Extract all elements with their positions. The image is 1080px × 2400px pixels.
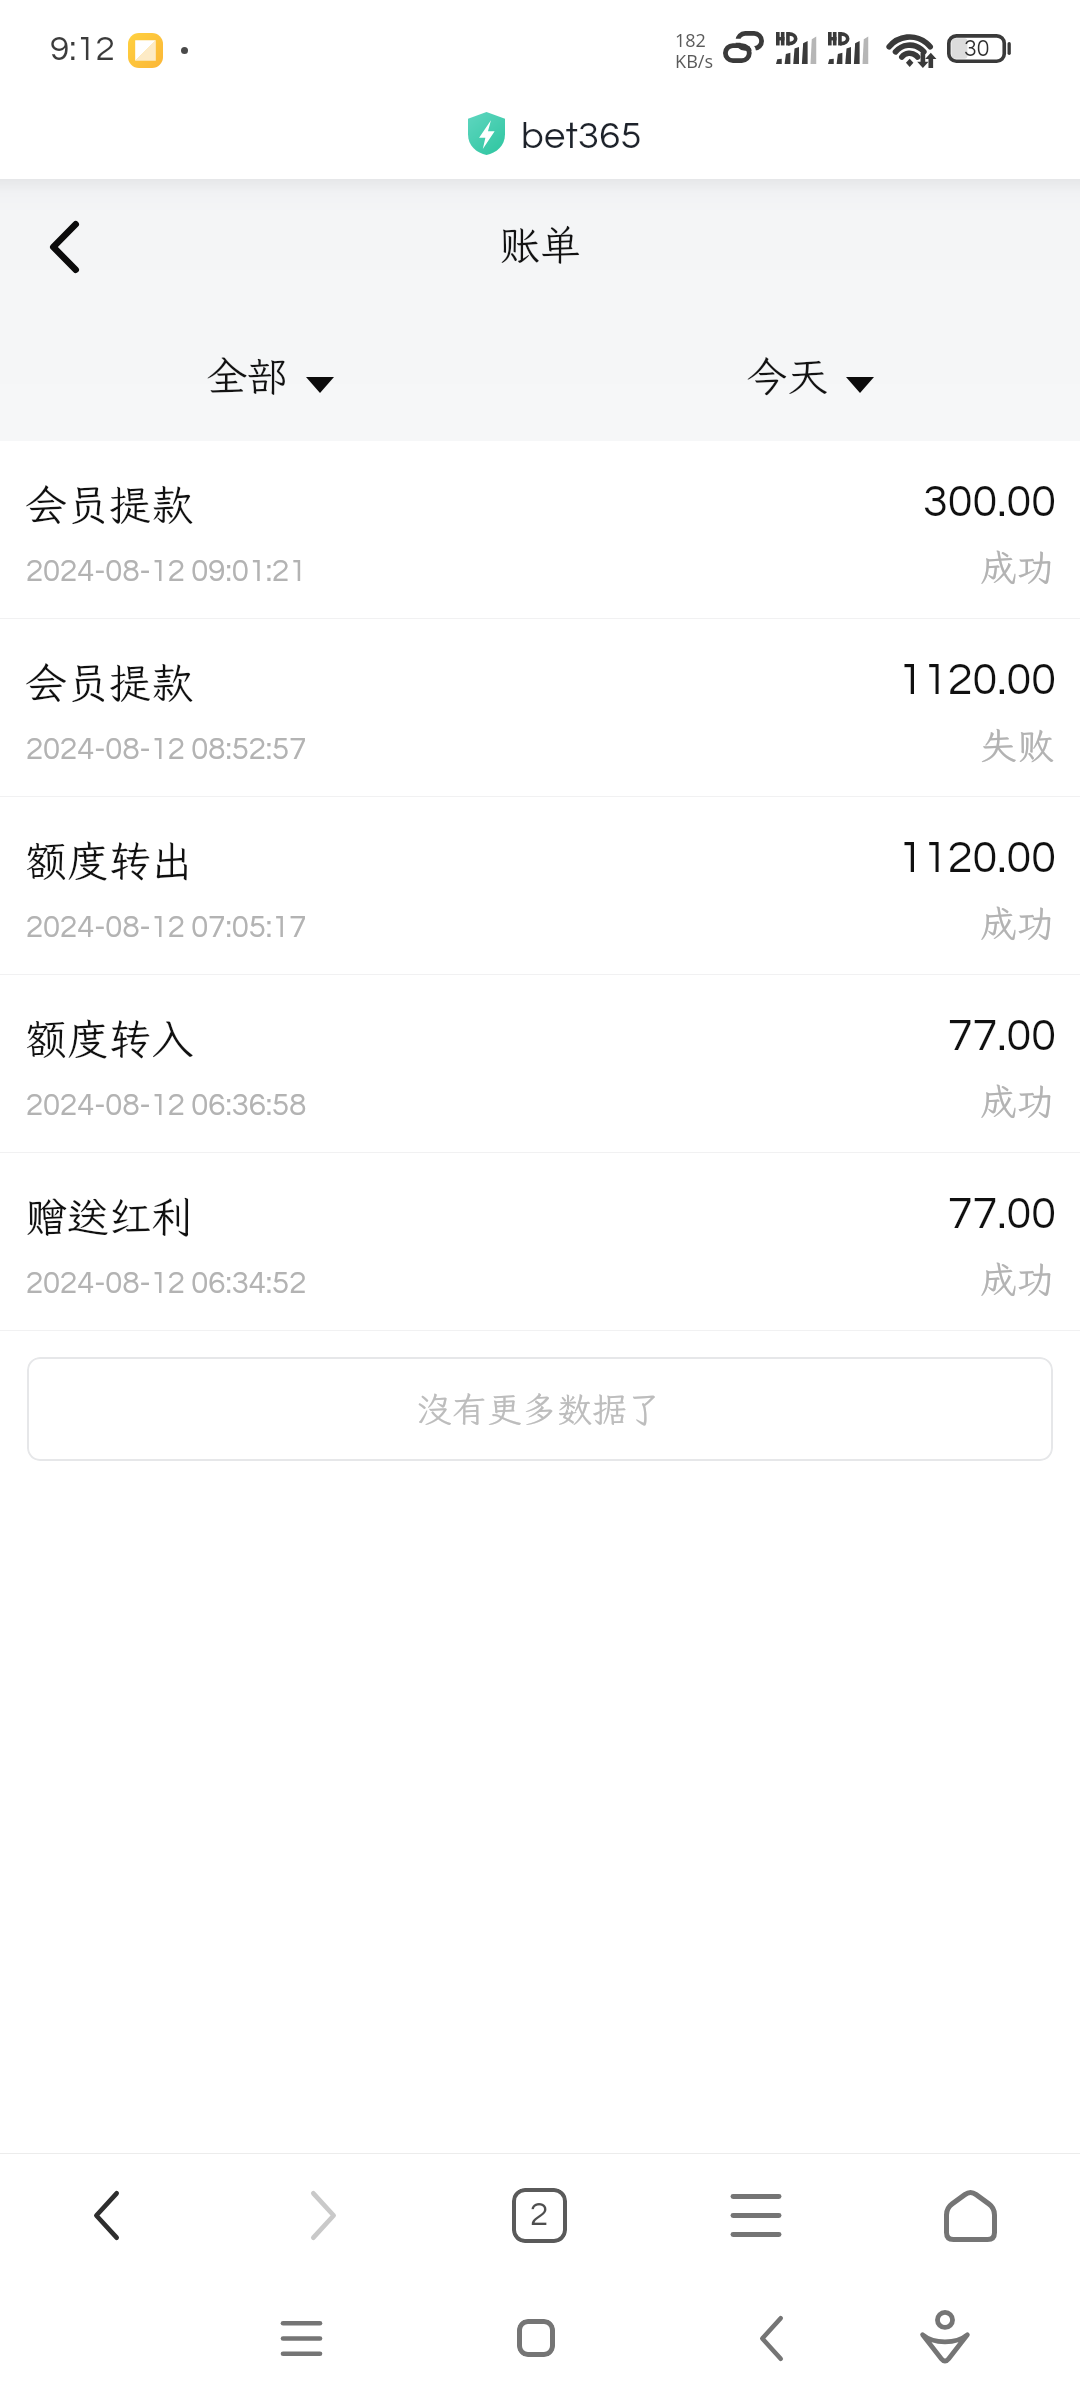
staticText: bet365 [521,117,642,156]
staticText: KB/s [675,49,714,74]
staticText: 1120.00 [898,835,1056,881]
staticText: 赠送红利 [25,1189,194,1244]
button[interactable]: 会员提款 [0,619,1080,796]
staticText: 1120.00 [898,657,1056,703]
button[interactable]: Menu [702,2161,810,2269]
button[interactable]: Home [486,2288,586,2388]
button[interactable]: 额度转入 [0,975,1080,1152]
staticText: 77.00 [947,1191,1056,1237]
button[interactable]: Assistant [895,2288,995,2388]
button[interactable]: 赠送红利 [0,1153,1080,1330]
staticText: 没有更多数据了 [417,1386,663,1432]
staticText: 账单 [499,218,581,272]
button[interactable]: Forward [269,2161,377,2269]
staticText: 182 [675,28,706,53]
staticText: 成功 [980,543,1054,592]
button[interactable]: Home [916,2161,1024,2269]
staticText: 成功 [980,1255,1054,1304]
staticText: 300.00 [923,479,1056,525]
staticText: 失败 [980,721,1054,770]
button[interactable]: Back [721,2288,821,2388]
staticText: 9:12 [50,31,115,67]
staticText: 会员提款 [25,655,194,710]
staticText: 2024-08-12 07:05:17 [26,912,307,944]
staticText: 成功 [980,1077,1054,1126]
staticText: 77.00 [947,1013,1056,1059]
staticText: 成功 [980,899,1054,948]
staticText: 30 [964,37,990,61]
button[interactable]: Back [22,205,106,289]
staticText: 今天 [746,349,828,403]
staticText: 2 [530,2198,549,2232]
staticText: 2024-08-12 08:52:57 [26,734,307,766]
button[interactable]: Back [52,2161,160,2269]
staticText: 2024-08-12 06:34:52 [26,1268,307,1300]
button[interactable]: Tabs [485,2161,593,2269]
staticText: 2024-08-12 09:01:21 [26,556,307,588]
staticText: 额度转入 [25,1011,194,1066]
button[interactable]: Recents [251,2288,351,2388]
staticText: 2024-08-12 06:36:58 [26,1090,307,1122]
button[interactable]: 全部 [0,347,540,401]
button[interactable]: 今天 [540,347,1080,401]
button[interactable]: 会员提款 [0,441,1080,618]
staticText: 全部 [206,349,288,403]
button[interactable]: 额度转出 [0,797,1080,974]
staticText: 会员提款 [25,477,194,532]
staticText: 额度转出 [25,833,194,888]
